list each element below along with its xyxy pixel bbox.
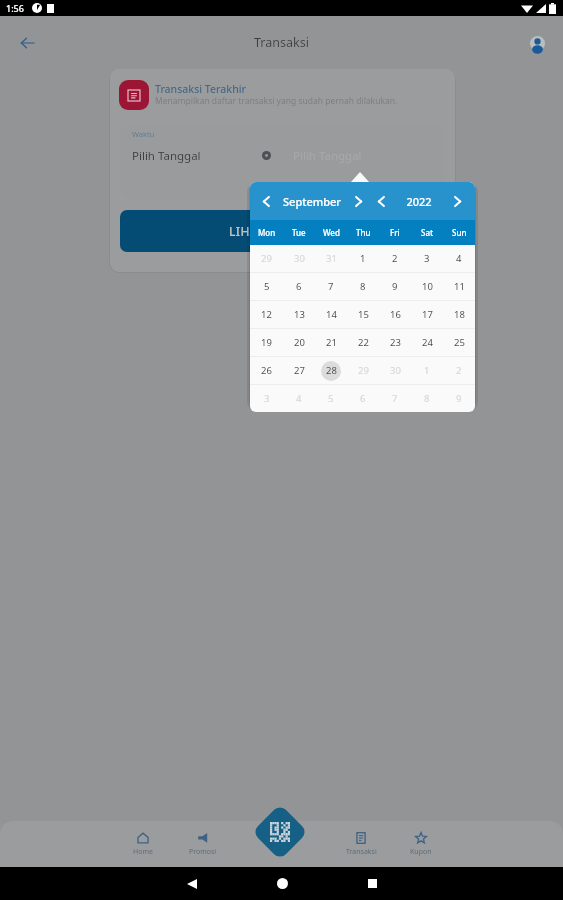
staticText: 30 <box>294 252 305 265</box>
button[interactable]: 15 <box>347 301 379 328</box>
button[interactable]: Home <box>252 867 312 900</box>
button[interactable]: 24 <box>411 329 443 356</box>
button[interactable]: Recents <box>342 867 402 900</box>
button[interactable]: Transaksi <box>331 821 391 867</box>
button[interactable]: 16 <box>379 301 411 328</box>
staticText: Sun <box>452 227 467 238</box>
button[interactable]: 21 <box>315 329 347 356</box>
staticText: Promosi <box>189 847 217 857</box>
button[interactable]: 29 <box>347 357 379 384</box>
button[interactable]: Clear date <box>257 146 275 164</box>
button[interactable]: 9 <box>443 385 475 412</box>
button[interactable]: 9 <box>379 273 411 300</box>
staticText: 5 <box>328 392 334 405</box>
staticText: 7 <box>392 392 398 405</box>
button[interactable]: 11 <box>443 273 475 300</box>
button[interactable]: 5 <box>315 385 347 412</box>
staticText: Home <box>133 847 153 857</box>
staticText: 26 <box>261 364 272 377</box>
button[interactable]: 22 <box>347 329 379 356</box>
button[interactable]: Scan QR <box>252 804 308 860</box>
button[interactable]: Previous <box>256 191 276 211</box>
button[interactable]: Back <box>162 867 222 900</box>
button[interactable]: 18 <box>443 301 475 328</box>
button[interactable]: 23 <box>379 329 411 356</box>
button[interactable]: 3 <box>411 245 443 272</box>
staticText: Kupon <box>410 847 432 857</box>
staticText: 2 <box>392 252 398 265</box>
button[interactable]: Next <box>348 191 368 211</box>
button[interactable]: 19 <box>250 329 283 356</box>
staticText: 4 <box>456 252 462 265</box>
button[interactable]: 2 <box>443 357 475 384</box>
staticText: 21 <box>326 336 337 349</box>
staticText: 31 <box>326 252 337 265</box>
staticText: 15 <box>358 308 369 321</box>
button[interactable]: Kupon <box>391 821 451 867</box>
staticText: Transaksi <box>346 847 377 857</box>
staticText: 20 <box>294 336 305 349</box>
button[interactable]: 5 <box>250 273 283 300</box>
staticText: Thu <box>356 227 371 238</box>
staticText: 9 <box>456 392 462 405</box>
button[interactable]: 12 <box>250 301 283 328</box>
staticText: 4 <box>296 392 302 405</box>
button[interactable]: 6 <box>347 385 379 412</box>
staticText: 1 <box>424 364 430 377</box>
staticText: Fri <box>390 227 400 238</box>
button[interactable]: 17 <box>411 301 443 328</box>
staticText: 19 <box>261 336 272 349</box>
staticText: 16 <box>390 308 401 321</box>
staticText: Sat <box>421 227 434 238</box>
staticText: 7 <box>328 280 334 293</box>
staticText: Menampilkan daftar transaksi yang sudah … <box>155 95 398 107</box>
button[interactable]: 14 <box>315 301 347 328</box>
staticText: 8 <box>424 392 430 405</box>
staticText: 10 <box>422 280 433 293</box>
button[interactable]: 29 <box>250 245 283 272</box>
staticText: 30 <box>390 364 401 377</box>
button[interactable]: 8 <box>411 385 443 412</box>
staticText: Mon <box>258 227 276 238</box>
button[interactable]: 31 <box>315 245 347 272</box>
staticText: Pilih Tanggal <box>293 148 362 164</box>
staticText: 27 <box>294 364 305 377</box>
staticText: 9 <box>392 280 398 293</box>
button[interactable]: 30 <box>379 357 411 384</box>
button[interactable]: 1 <box>347 245 379 272</box>
staticText: 14 <box>326 308 337 321</box>
button[interactable]: 28 <box>315 357 347 384</box>
button[interactable]: 6 <box>283 273 315 300</box>
button[interactable]: 10 <box>411 273 443 300</box>
button[interactable]: 27 <box>283 357 315 384</box>
button[interactable]: 4 <box>443 245 475 272</box>
staticText: 29 <box>261 252 272 265</box>
button[interactable]: 3 <box>250 385 283 412</box>
staticText: 1 <box>360 252 366 265</box>
staticText: Tue <box>292 227 306 238</box>
button[interactable]: 7 <box>379 385 411 412</box>
button[interactable]: 26 <box>250 357 283 384</box>
button[interactable]: 30 <box>283 245 315 272</box>
button[interactable]: 2 <box>379 245 411 272</box>
button[interactable]: Back <box>10 26 44 60</box>
button[interactable]: 8 <box>347 273 379 300</box>
staticText: 3 <box>264 392 270 405</box>
staticText: 22 <box>358 336 369 349</box>
button[interactable]: 4 <box>283 385 315 412</box>
button[interactable]: LIHAT TRANSAKSI <box>120 210 444 252</box>
staticText: 3 <box>424 252 430 265</box>
button[interactable]: 7 <box>315 273 347 300</box>
button[interactable]: Home <box>113 821 173 867</box>
button[interactable]: Promosi <box>173 821 233 867</box>
staticText: LIHAT TRANSAKSI <box>229 223 336 239</box>
button[interactable]: 20 <box>283 329 315 356</box>
button[interactable]: Previous <box>371 191 391 211</box>
staticText: 29 <box>358 364 369 377</box>
button[interactable]: 13 <box>283 301 315 328</box>
button[interactable]: Account <box>523 29 551 57</box>
button[interactable]: 25 <box>443 329 475 356</box>
button[interactable]: Next <box>447 191 467 211</box>
